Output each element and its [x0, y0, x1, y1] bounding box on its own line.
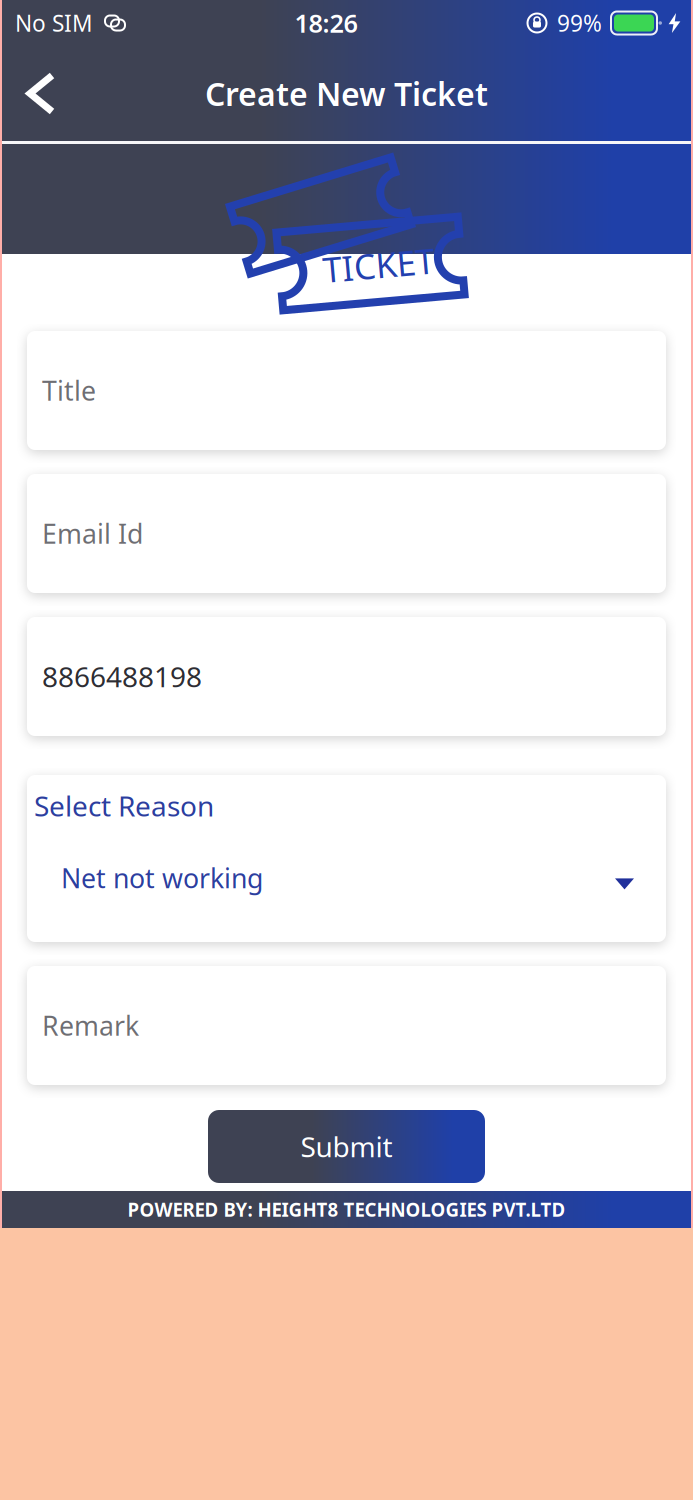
staticText: TICKET	[322, 242, 434, 288]
button[interactable]: Title	[27, 331, 666, 450]
staticText: 8866488198	[42, 658, 202, 695]
staticText: POWERED BY: HEIGHT8 TECHNOLOGIES PVT.LTD	[127, 1197, 565, 1222]
button[interactable]: Submit	[208, 1110, 485, 1183]
staticText: Create New Ticket	[205, 72, 488, 115]
button[interactable]: Select Reason	[27, 775, 666, 942]
staticText: Email Id	[42, 516, 143, 551]
staticText: 18:26	[294, 6, 357, 40]
staticText: Remark	[42, 1008, 139, 1043]
staticText: Title	[42, 373, 96, 408]
button[interactable]: Back	[0, 55, 74, 131]
staticText: Submit	[300, 1128, 392, 1165]
button[interactable]: 8866488198	[27, 617, 666, 736]
staticText: 99%	[557, 8, 602, 38]
button[interactable]: Email Id	[27, 474, 666, 593]
staticText: Select Reason	[34, 787, 214, 824]
button[interactable]: Remark	[27, 966, 666, 1085]
staticText: Net not working	[61, 860, 263, 896]
staticText: No SIM	[15, 8, 93, 38]
